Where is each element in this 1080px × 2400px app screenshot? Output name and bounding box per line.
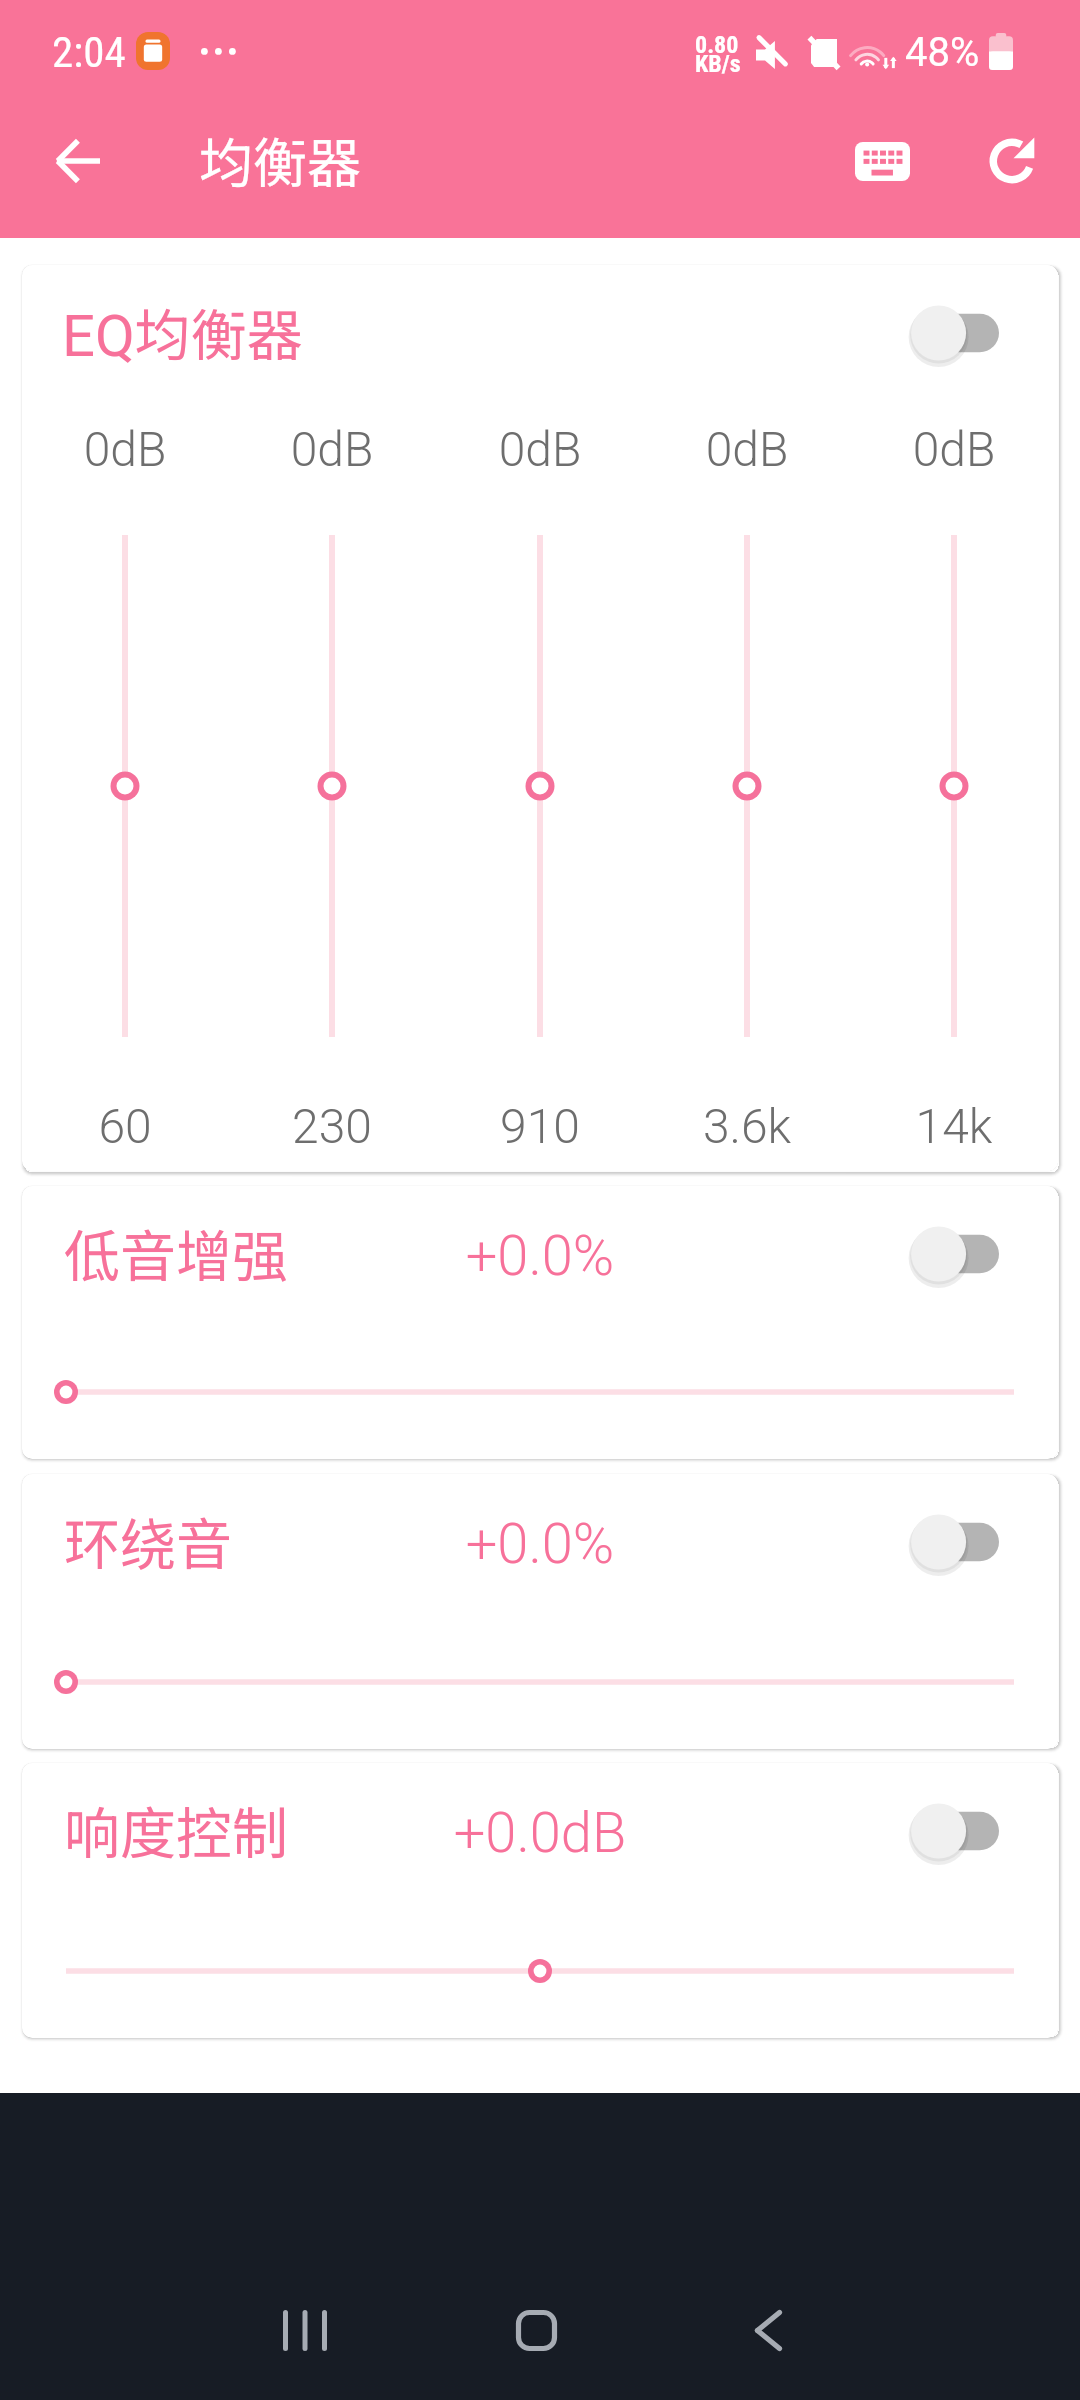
staticText: 环绕音: [64, 1500, 232, 1581]
staticText: 0dB: [25, 421, 225, 477]
button[interactable]: Home: [471, 2265, 601, 2395]
staticText: +0.0dB: [240, 1800, 840, 1866]
staticText: 230: [232, 1098, 432, 1154]
staticText: +0.0%: [240, 1223, 840, 1289]
button[interactable]: 响度控制 level +0.0dB: [22, 1936, 1058, 2006]
button[interactable]: 低音增强 level +0.0%: [22, 1357, 1058, 1427]
staticText: 0dB: [854, 421, 1054, 477]
staticText: 响度控制: [64, 1789, 288, 1870]
staticText: +0.0%: [240, 1511, 840, 1577]
button[interactable]: 14k Hz band, 0 dB: [914, 535, 994, 1037]
button[interactable]: Keyboard: [827, 106, 937, 216]
staticText: 0dB: [647, 421, 847, 477]
staticText: 低音增强: [64, 1212, 288, 1293]
button[interactable]: Recent apps: [240, 2265, 370, 2395]
staticText: 均衡器: [199, 120, 361, 198]
button[interactable]: Back: [31, 115, 123, 207]
button[interactable]: Enable 环绕音: [891, 1494, 1037, 1590]
staticText: KB/s: [695, 50, 741, 78]
staticText: 48%: [905, 29, 980, 76]
button[interactable]: Refresh: [957, 106, 1067, 216]
staticText: 14k: [854, 1098, 1054, 1154]
button[interactable]: 60 Hz band, 0 dB: [85, 535, 165, 1037]
staticText: 0dB: [232, 421, 432, 477]
staticText: 0.80: [695, 31, 739, 59]
button[interactable]: 环绕音 level +0.0%: [22, 1647, 1058, 1717]
button[interactable]: Enable EQ equalizer: [891, 285, 1037, 381]
staticText: 3.6k: [647, 1098, 847, 1154]
button[interactable]: Enable 响度控制: [891, 1783, 1037, 1879]
button[interactable]: 230 Hz band, 0 dB: [292, 535, 372, 1037]
button[interactable]: Enable 低音增强: [891, 1206, 1037, 1302]
staticText: 0dB: [440, 421, 640, 477]
staticText: 2:04: [52, 27, 126, 77]
staticText: 910: [440, 1098, 640, 1154]
button[interactable]: 910 Hz band, 0 dB: [500, 535, 580, 1037]
button[interactable]: Back: [703, 2265, 833, 2395]
button[interactable]: 3.6k Hz band, 0 dB: [707, 535, 787, 1037]
staticText: EQ均衡器: [62, 291, 303, 372]
staticText: 60: [25, 1098, 225, 1154]
